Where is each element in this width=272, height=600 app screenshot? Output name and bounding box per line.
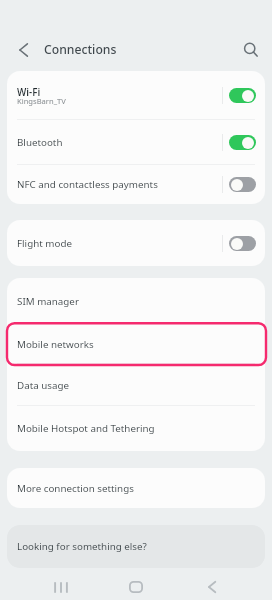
button[interactable]: Switch on <box>229 88 256 103</box>
button[interactable]: Back <box>12 39 34 61</box>
staticText: Connections <box>44 41 117 58</box>
button[interactable]: Flight mode <box>7 220 265 266</box>
button[interactable]: Switch off <box>229 236 256 251</box>
staticText: SIM manager <box>17 295 79 308</box>
staticText: Mobile Hotspot and Tethering <box>17 422 155 435</box>
button[interactable]: NFC and contactless payments <box>7 165 265 204</box>
button[interactable]: Mobile networks <box>7 324 265 364</box>
button[interactable]: Data usage <box>7 364 265 406</box>
button[interactable]: Search <box>240 39 262 61</box>
button[interactable]: Recent apps <box>46 573 76 600</box>
button[interactable]: Back <box>197 573 227 600</box>
button[interactable]: Switch on <box>229 135 256 150</box>
button[interactable]: SIM manager <box>7 278 265 324</box>
staticText: Data usage <box>17 379 70 392</box>
button[interactable]: More connection settings <box>7 468 265 508</box>
button[interactable]: Looking for something else? <box>7 525 265 568</box>
staticText: Mobile networks <box>17 338 94 351</box>
staticText: More connection settings <box>17 482 134 495</box>
button[interactable]: Wi-Fi <box>7 71 265 120</box>
staticText: NFC and contactless payments <box>17 178 158 191</box>
button[interactable]: Home <box>121 573 151 600</box>
staticText: KingsBarn_TV <box>17 96 66 106</box>
staticText: Looking for something else? <box>17 540 147 553</box>
button[interactable]: Bluetooth <box>7 120 265 165</box>
staticText: Flight mode <box>17 237 72 250</box>
staticText: Bluetooth <box>17 136 63 149</box>
button[interactable]: Mobile Hotspot and Tethering <box>7 406 265 451</box>
button[interactable]: Switch off <box>229 177 256 192</box>
staticText: Wi-Fi <box>17 86 41 99</box>
